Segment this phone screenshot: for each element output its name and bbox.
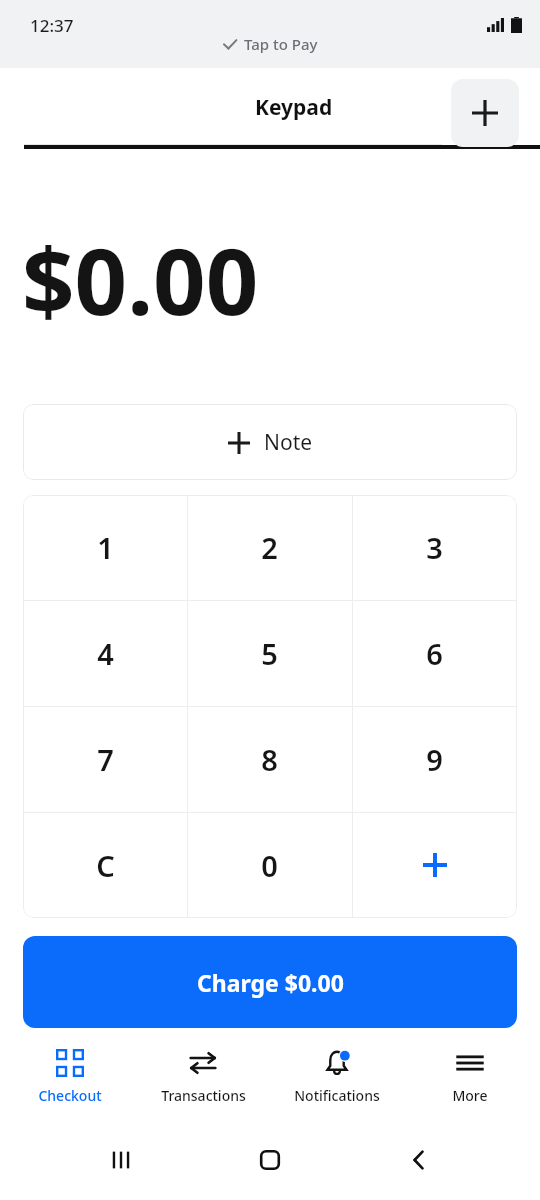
staticText: 3 [426,528,443,567]
staticText: Checkout [38,1086,102,1105]
button[interactable]: Note [23,404,517,480]
button[interactable]: Recents [93,1132,149,1188]
button[interactable] [352,812,517,918]
button[interactable]: 9 [352,706,517,812]
staticText: 5 [261,634,278,673]
staticText: $0.00 [22,217,259,342]
button[interactable]: 5 [187,600,352,706]
staticText: 12:37 [30,14,74,37]
button[interactable]: Keypad [24,93,540,149]
button[interactable]: 7 [23,706,187,812]
button[interactable]: Charge $0.00 [23,936,517,1028]
button[interactable]: Notifications [273,1045,401,1109]
staticText: Keypad [255,93,333,122]
staticText: 1 [97,528,114,567]
staticText: Tap to Pay [244,34,318,54]
staticText: Notifications [294,1086,380,1105]
button[interactable]: 1 [23,495,187,600]
button[interactable]: 3 [352,495,517,600]
staticText: More [452,1086,488,1105]
staticText: 0 [261,846,278,885]
staticText: Transactions [161,1086,246,1105]
button[interactable]: Home [242,1132,298,1188]
button[interactable]: Back [391,1132,447,1188]
button[interactable]: 4 [23,600,187,706]
button[interactable]: Add [451,79,519,147]
button[interactable]: C [23,812,187,918]
button[interactable]: 0 [187,812,352,918]
staticText: 7 [97,740,114,779]
button[interactable]: More [406,1045,534,1109]
staticText: 6 [426,634,443,673]
staticText: Charge $0.00 [197,967,344,998]
button[interactable]: Transactions [139,1045,267,1109]
staticText: 9 [426,740,443,779]
staticText: Note [264,428,313,457]
staticText: 4 [97,634,114,673]
button[interactable]: 8 [187,706,352,812]
button[interactable]: 6 [352,600,517,706]
staticText: C [96,846,115,885]
staticText: 8 [261,740,278,779]
button[interactable]: 2 [187,495,352,600]
button[interactable]: Checkout [6,1045,134,1109]
staticText: 2 [261,528,278,567]
